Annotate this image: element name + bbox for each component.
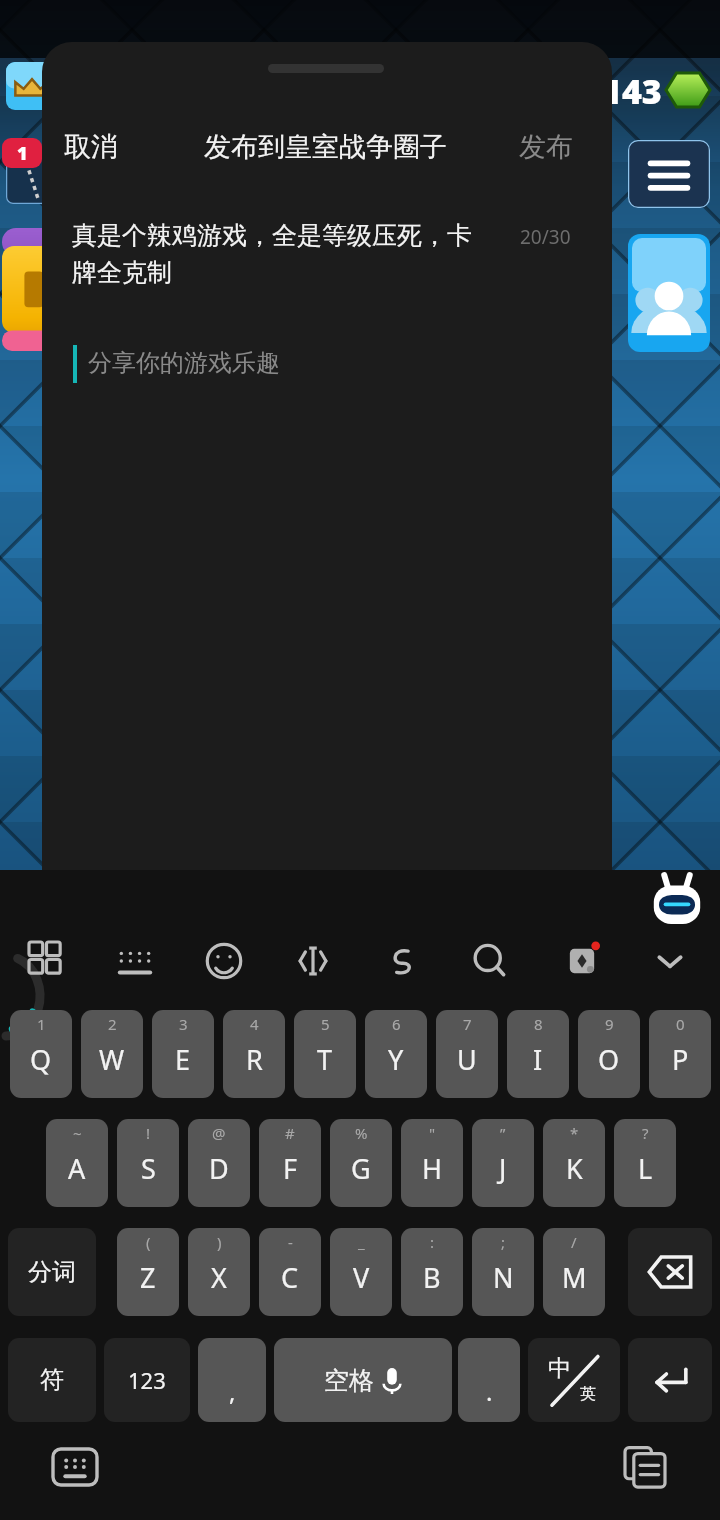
- staticText: 7: [463, 1014, 472, 1034]
- staticText: 2: [108, 1014, 117, 1034]
- button[interactable]: Clipboard: [618, 1440, 672, 1494]
- staticText: ~: [73, 1123, 82, 1143]
- staticText: P: [672, 1041, 689, 1078]
- staticText: 3: [179, 1014, 188, 1034]
- staticText: T: [317, 1041, 333, 1078]
- button[interactable]: 3: [152, 1010, 214, 1098]
- button[interactable]: 空格: [274, 1338, 452, 1422]
- staticText: J: [499, 1150, 507, 1187]
- staticText: H: [422, 1150, 443, 1187]
- button[interactable]: .: [458, 1338, 520, 1422]
- staticText: O: [598, 1041, 620, 1078]
- staticText: F: [283, 1150, 298, 1187]
- button[interactable]: Crown chest: [6, 62, 58, 110]
- button[interactable]: 8: [507, 1010, 569, 1098]
- button[interactable]: /: [543, 1228, 605, 1316]
- button[interactable]: 7: [436, 1010, 498, 1098]
- button[interactable]: ?: [614, 1119, 676, 1207]
- staticText: Z: [140, 1259, 156, 1296]
- staticText: 英: [580, 1384, 596, 1404]
- button[interactable]: Keyboard tool: [374, 933, 430, 989]
- staticText: D: [209, 1150, 229, 1187]
- button[interactable]: !: [117, 1119, 179, 1207]
- staticText: :: [430, 1232, 435, 1252]
- button[interactable]: Keyboard tool: [285, 933, 341, 989]
- button[interactable]: ~: [46, 1119, 108, 1207]
- button[interactable]: Keyboard tool: [196, 933, 252, 989]
- button[interactable]: Clan members: [628, 234, 710, 352]
- button[interactable]: 分享你的游戏乐趣: [72, 342, 612, 400]
- button[interactable]: 5: [294, 1010, 356, 1098]
- staticText: L: [638, 1150, 653, 1187]
- staticText: !: [146, 1123, 151, 1143]
- staticText: 6: [392, 1014, 401, 1034]
- staticText: 分享你的游戏乐趣: [88, 348, 280, 378]
- button[interactable]: #: [259, 1119, 321, 1207]
- staticText: ": [429, 1123, 436, 1143]
- staticText: C: [281, 1259, 299, 1296]
- button[interactable]: ,: [198, 1338, 266, 1422]
- button[interactable]: Switch keyboard: [48, 1440, 102, 1494]
- button[interactable]: Keyboard tool: [554, 933, 610, 989]
- button[interactable]: 分词: [8, 1228, 96, 1316]
- button[interactable]: Keyboard tool: [107, 933, 163, 989]
- button[interactable]: 1: [10, 1010, 72, 1098]
- button[interactable]: 取消: [64, 122, 154, 172]
- button[interactable]: *: [543, 1119, 605, 1207]
- button[interactable]: 2: [81, 1010, 143, 1098]
- button[interactable]: Gold chest: [2, 228, 58, 356]
- staticText: ”: [500, 1123, 506, 1143]
- button[interactable]: _: [330, 1228, 392, 1316]
- button[interactable]: 4: [223, 1010, 285, 1098]
- staticText: G: [351, 1150, 371, 1187]
- staticText: ;: [501, 1232, 506, 1252]
- button[interactable]: 6: [365, 1010, 427, 1098]
- staticText: (: [146, 1232, 151, 1252]
- staticText: Y: [388, 1041, 404, 1078]
- staticText: S: [141, 1150, 156, 1187]
- button[interactable]: Enter: [628, 1338, 712, 1422]
- staticText: %: [355, 1123, 368, 1143]
- staticText: -: [288, 1232, 293, 1252]
- button[interactable]: ): [188, 1228, 250, 1316]
- button[interactable]: (: [117, 1228, 179, 1316]
- staticText: 发布到皇室战争圈子: [204, 130, 447, 164]
- staticText: 取消: [64, 130, 118, 164]
- button[interactable]: 中: [528, 1338, 620, 1422]
- staticText: 20/30: [520, 224, 571, 250]
- button[interactable]: ;: [472, 1228, 534, 1316]
- button[interactable]: 9: [578, 1010, 640, 1098]
- button[interactable]: Menu: [628, 140, 710, 208]
- button[interactable]: :: [401, 1228, 463, 1316]
- staticText: #: [285, 1123, 295, 1143]
- staticText: 4: [250, 1014, 259, 1034]
- button[interactable]: Keyboard tool: [462, 933, 518, 989]
- button[interactable]: 发布: [500, 122, 592, 172]
- staticText: ,: [229, 1375, 236, 1408]
- button[interactable]: ”: [472, 1119, 534, 1207]
- button[interactable]: Keyboard tool: [642, 933, 698, 989]
- staticText: 符: [40, 1365, 64, 1395]
- staticText: 5: [321, 1014, 330, 1034]
- button[interactable]: 0: [649, 1010, 711, 1098]
- button[interactable]: Assistant: [648, 874, 706, 932]
- staticText: 9: [605, 1014, 614, 1034]
- staticText: 123: [128, 1365, 166, 1395]
- button[interactable]: @: [188, 1119, 250, 1207]
- staticText: 真是个辣鸡游戏，全是等级压死，卡牌全克制: [72, 220, 492, 288]
- button[interactable]: Keyboard tool: [20, 933, 76, 989]
- staticText: 中: [548, 1354, 571, 1383]
- button[interactable]: ": [401, 1119, 463, 1207]
- staticText: .: [486, 1375, 493, 1408]
- staticText: _: [358, 1232, 365, 1252]
- button[interactable]: 符: [8, 1338, 96, 1422]
- button[interactable]: 123: [104, 1338, 190, 1422]
- staticText: *: [570, 1123, 579, 1143]
- button[interactable]: Backspace: [628, 1228, 712, 1316]
- button[interactable]: %: [330, 1119, 392, 1207]
- staticText: E: [175, 1041, 191, 1078]
- button[interactable]: Empty chest slot: [6, 148, 58, 204]
- staticText: I: [533, 1041, 543, 1078]
- button[interactable]: -: [259, 1228, 321, 1316]
- staticText: M: [562, 1259, 587, 1296]
